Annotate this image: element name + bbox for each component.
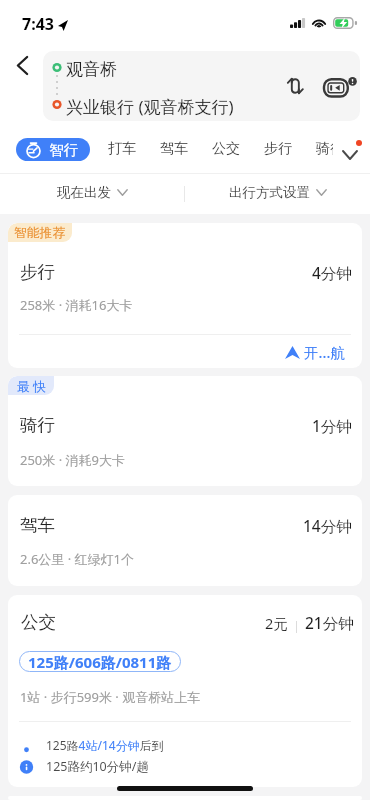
- button[interactable]: 现在出发: [0, 174, 184, 214]
- staticText: 兴业银行 (观音桥支行): [66, 95, 234, 118]
- staticText: 步行: [264, 140, 292, 158]
- staticText: 2元: [265, 613, 288, 633]
- staticText: 250米 · 消耗9大卡: [20, 451, 125, 469]
- button[interactable]: 展开更多出行方式: [334, 133, 366, 165]
- button[interactable]: 驾车: [148, 131, 200, 167]
- button[interactable]: 返回: [10, 53, 34, 77]
- staticText: 125路约10分钟/趟: [46, 758, 149, 775]
- staticText: 4分钟: [312, 262, 352, 283]
- button[interactable]: 开...航: [282, 338, 348, 366]
- button[interactable]: 骑行: [304, 131, 333, 167]
- staticText: 驾车: [20, 514, 55, 536]
- staticText: 打车: [108, 140, 136, 158]
- staticText: 出行方式设置: [229, 184, 310, 201]
- staticText: 观音桥: [66, 59, 117, 80]
- staticText: 骑行: [20, 414, 55, 436]
- staticText: 1站 · 步行599米 · 观音桥站上车: [20, 688, 201, 706]
- staticText: 智行: [49, 141, 78, 159]
- button[interactable]: 观音桥: [43, 51, 360, 121]
- button[interactable]: 我的车辆: [320, 65, 360, 107]
- staticText: 1分钟: [312, 415, 352, 436]
- button[interactable]: 步行: [252, 131, 304, 167]
- button[interactable]: 驾车: [8, 495, 362, 586]
- staticText: 公交: [21, 611, 56, 633]
- staticText: 21分钟: [305, 612, 354, 633]
- staticText: 最 快: [17, 377, 46, 394]
- staticText: 14分钟: [303, 515, 352, 536]
- button[interactable]: 智行: [16, 138, 90, 161]
- staticText: 7:43: [22, 13, 54, 35]
- staticText: 骑行: [316, 140, 333, 158]
- staticText: 125路4站/14分钟后到: [46, 737, 164, 753]
- button[interactable]: 打车: [96, 131, 148, 167]
- staticText: 步行: [20, 261, 55, 283]
- staticText: 开...航: [304, 342, 345, 362]
- button[interactable]: 出行方式设置: [185, 174, 370, 214]
- button[interactable]: 交换起终点: [278, 69, 312, 103]
- button[interactable]: 智能推荐: [8, 223, 362, 368]
- staticText: 现在出发: [57, 184, 111, 201]
- button[interactable]: 最 快: [8, 376, 362, 486]
- staticText: 125路/606路/0811路: [28, 652, 172, 672]
- staticText: 智能推荐: [14, 225, 66, 241]
- staticText: 驾车: [160, 140, 188, 158]
- button[interactable]: 公交: [200, 131, 252, 167]
- staticText: 2.6公里 · 红绿灯1个: [20, 550, 135, 568]
- staticText: 公交: [212, 140, 240, 158]
- staticText: 258米 · 消耗16大卡: [20, 296, 133, 314]
- button[interactable]: 公交: [8, 595, 362, 787]
